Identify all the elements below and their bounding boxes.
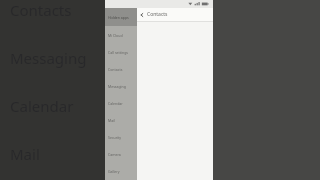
staticText: Camera — [108, 152, 121, 157]
staticText: Calendar — [108, 101, 123, 106]
button[interactable]: Hidden apps — [105, 8, 137, 26]
button[interactable]: Mi Cloud — [105, 26, 137, 44]
staticText: Contacts — [108, 67, 123, 72]
button[interactable]: Calendar — [105, 95, 137, 112]
staticText: Call settings — [108, 50, 128, 55]
button[interactable]: Gallery — [105, 163, 137, 180]
button[interactable]: Camera — [105, 146, 137, 163]
staticText: Mail — [108, 118, 115, 123]
staticText: Messaging — [108, 84, 126, 89]
button[interactable]: Mail — [10, 144, 40, 164]
staticText: Gallery — [108, 169, 120, 174]
button[interactable]: Messaging — [105, 78, 137, 95]
staticText: Contacts — [147, 11, 168, 18]
staticText: Security — [108, 135, 122, 140]
button[interactable]: Messaging — [10, 48, 87, 68]
button[interactable]: Contacts — [105, 61, 137, 78]
button[interactable]: Back — [137, 10, 147, 20]
button[interactable]: Calendar — [10, 96, 74, 116]
button[interactable]: Contacts — [10, 0, 72, 20]
button[interactable]: Mail — [105, 112, 137, 129]
button[interactable]: Security — [105, 129, 137, 146]
button[interactable]: Call settings — [105, 44, 137, 61]
staticText: Mi Cloud — [108, 33, 123, 38]
staticText: Hidden apps — [108, 15, 129, 20]
